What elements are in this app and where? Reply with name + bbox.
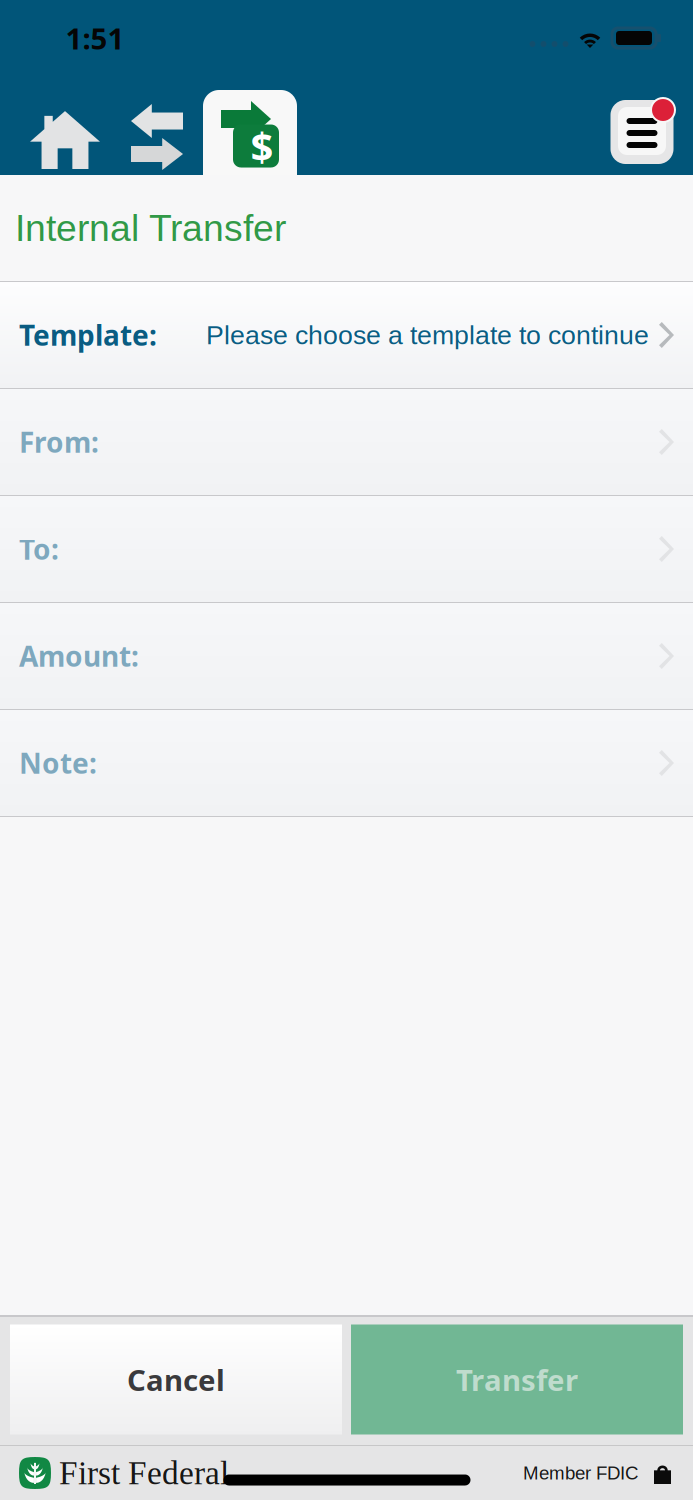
button[interactable]: Transfers (121, 88, 193, 185)
staticText: 1:51 (65, 18, 124, 58)
staticText: Transfer (456, 1359, 578, 1399)
staticText: Member FDIC (523, 1463, 638, 1483)
staticText: To: (19, 530, 59, 568)
button[interactable]: Messages (600, 78, 684, 186)
staticText: Cancel (127, 1359, 225, 1399)
staticText: Internal Transfer (15, 207, 286, 249)
button[interactable]: Internal Transfer (203, 78, 297, 184)
staticText: $ (250, 119, 273, 173)
button[interactable]: Amount: (0, 603, 693, 709)
button[interactable]: Template: (0, 282, 693, 388)
button[interactable]: To: (0, 496, 693, 602)
button[interactable]: Transfer (351, 1324, 683, 1434)
staticText: Amount: (19, 637, 139, 675)
button[interactable]: Note: (0, 710, 693, 816)
staticText: From: (19, 423, 99, 461)
button[interactable]: Cancel (10, 1324, 342, 1434)
button[interactable]: Home (17, 90, 113, 187)
staticText: First Federal (59, 1454, 229, 1491)
staticText: Template: (19, 316, 157, 354)
button[interactable]: From: (0, 389, 693, 495)
staticText: Please choose a template to continue (206, 320, 649, 350)
staticText: Note: (19, 744, 97, 782)
